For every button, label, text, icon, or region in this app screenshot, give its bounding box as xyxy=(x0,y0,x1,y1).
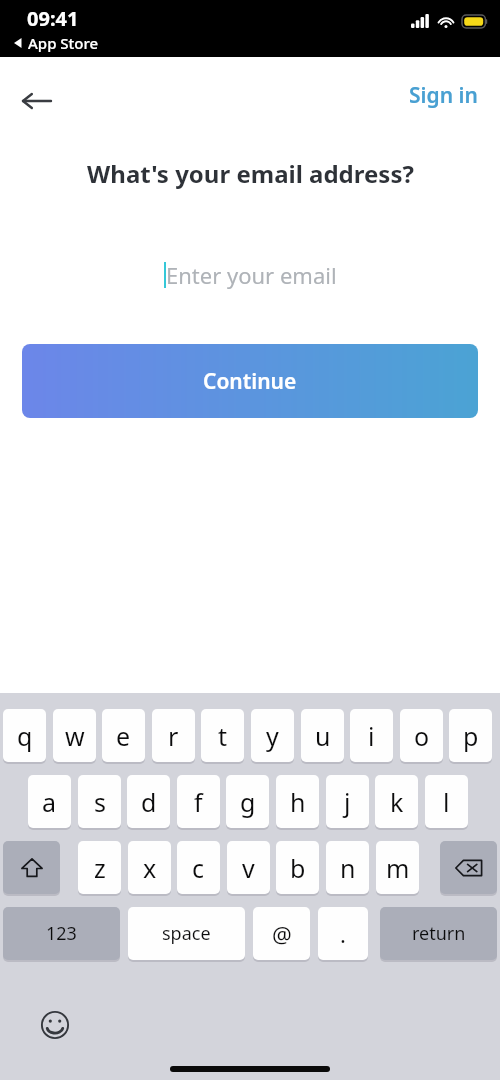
button[interactable]: Back xyxy=(12,77,60,125)
staticText: c xyxy=(192,851,205,885)
button[interactable]: Continue xyxy=(22,344,478,418)
button[interactable]: Backspace xyxy=(440,841,497,894)
staticText: Sign in xyxy=(409,81,478,110)
staticText: p xyxy=(463,719,479,753)
button[interactable]: space xyxy=(128,907,245,960)
button[interactable]: n xyxy=(326,841,369,894)
button[interactable]: c xyxy=(177,841,220,894)
staticText: s xyxy=(94,785,106,819)
button[interactable]: l xyxy=(425,775,468,828)
button[interactable]: Sign in xyxy=(397,75,490,116)
button[interactable]: e xyxy=(102,709,145,762)
button[interactable]: w xyxy=(53,709,96,762)
button[interactable]: f xyxy=(177,775,220,828)
button[interactable]: return xyxy=(380,907,497,960)
button[interactable]: v xyxy=(227,841,270,894)
button[interactable]: o xyxy=(400,709,443,762)
staticText: b xyxy=(290,851,306,885)
button[interactable]: z xyxy=(78,841,121,894)
staticText: What's your email address? xyxy=(87,157,414,190)
button[interactable]: k xyxy=(375,775,418,828)
button[interactable]: @ xyxy=(253,907,310,960)
staticText: return xyxy=(412,921,466,946)
button[interactable]: s xyxy=(78,775,121,828)
button[interactable]: Enter your email xyxy=(0,252,500,298)
staticText: space xyxy=(162,921,211,946)
button[interactable]: q xyxy=(3,709,46,762)
button[interactable]: a xyxy=(28,775,71,828)
staticText: Continue xyxy=(203,367,297,396)
staticText: w xyxy=(65,719,85,753)
staticText: n xyxy=(340,851,356,885)
staticText: v xyxy=(242,851,255,885)
button[interactable]: r xyxy=(152,709,195,762)
button[interactable]: u xyxy=(301,709,344,762)
staticText: @ xyxy=(272,919,292,949)
staticText: r xyxy=(168,719,179,753)
staticText: g xyxy=(240,785,256,819)
staticText: 09:41 xyxy=(27,5,79,32)
staticText: h xyxy=(290,785,306,819)
staticText: y xyxy=(266,719,279,753)
staticText: a xyxy=(42,785,57,819)
staticText: Enter your email xyxy=(166,260,337,290)
staticText: q xyxy=(17,719,33,753)
staticText: x xyxy=(143,851,157,885)
button[interactable]: p xyxy=(449,709,492,762)
staticText: e xyxy=(116,719,131,753)
staticText: l xyxy=(443,785,450,819)
button[interactable]: h xyxy=(276,775,319,828)
button[interactable]: . xyxy=(318,907,368,960)
button[interactable]: g xyxy=(226,775,269,828)
staticText: z xyxy=(94,851,106,885)
staticText: App Store xyxy=(28,33,99,53)
button[interactable]: Shift xyxy=(3,841,60,894)
staticText: m xyxy=(386,851,410,885)
staticText: i xyxy=(368,719,375,753)
staticText: o xyxy=(414,719,430,753)
button[interactable]: Emoji keyboard xyxy=(36,1006,74,1044)
button[interactable]: x xyxy=(128,841,171,894)
button[interactable]: t xyxy=(201,709,244,762)
staticText: 123 xyxy=(46,921,77,946)
button[interactable]: m xyxy=(376,841,419,894)
button[interactable]: j xyxy=(326,775,369,828)
staticText: f xyxy=(194,785,203,819)
button[interactable]: 123 xyxy=(3,907,120,960)
staticText: t xyxy=(218,719,228,753)
button[interactable]: b xyxy=(276,841,319,894)
staticText: j xyxy=(344,785,351,819)
staticText: u xyxy=(315,719,331,753)
staticText: d xyxy=(141,785,157,819)
button[interactable]: d xyxy=(127,775,170,828)
staticText: k xyxy=(390,785,404,819)
button[interactable]: i xyxy=(350,709,393,762)
staticText: . xyxy=(340,919,346,949)
button[interactable]: y xyxy=(251,709,294,762)
